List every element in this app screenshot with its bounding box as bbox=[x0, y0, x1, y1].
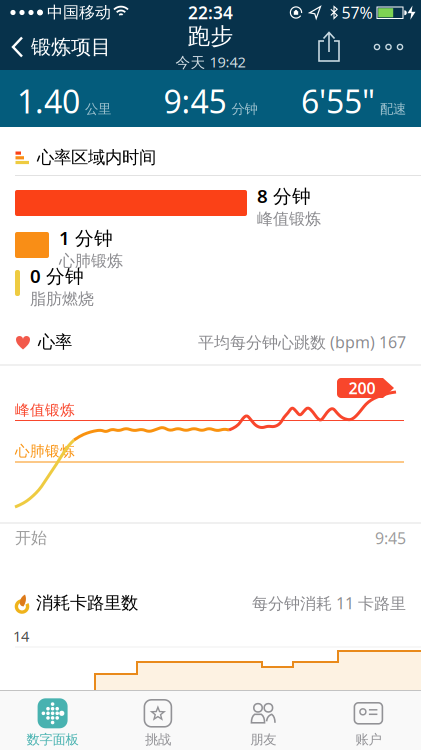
staticText: 挑战 bbox=[145, 731, 171, 748]
staticText: 心肺锻炼 bbox=[15, 442, 75, 460]
staticText: 今天 19:42 bbox=[175, 52, 245, 72]
staticText: 跑步 bbox=[187, 22, 233, 50]
staticText: 平均每分钟心跳数 (bpm) 167 bbox=[198, 331, 406, 353]
staticText: 开始 bbox=[15, 528, 47, 548]
staticText: 心率 bbox=[38, 331, 72, 353]
staticText: 脂肪燃烧 bbox=[30, 289, 94, 309]
button[interactable]: 朋友 bbox=[213, 695, 313, 750]
staticText: 1 分钟 bbox=[59, 225, 113, 250]
staticText: 峰值锻炼 bbox=[257, 209, 321, 229]
staticText: 心率区域内时间 bbox=[37, 147, 156, 168]
staticText: 8 分钟 bbox=[257, 183, 311, 208]
staticText: 200 bbox=[348, 377, 375, 399]
staticText: 峰值锻炼 bbox=[15, 401, 75, 419]
staticText: 1.40 bbox=[17, 80, 80, 122]
staticText: 数字面板 bbox=[27, 731, 79, 748]
button[interactable]: 挑战 bbox=[108, 695, 208, 750]
button[interactable]: 账户 bbox=[318, 695, 418, 750]
staticText: 锻炼项目 bbox=[31, 35, 111, 59]
staticText: 心肺锻炼 bbox=[59, 251, 123, 271]
staticText: 14 bbox=[13, 626, 29, 646]
button[interactable]: 数字面板 bbox=[3, 695, 103, 750]
staticText: 朋友 bbox=[250, 731, 276, 748]
staticText: 配速 bbox=[380, 101, 406, 117]
staticText: 账户 bbox=[355, 731, 381, 748]
staticText: 57% bbox=[341, 2, 372, 23]
staticText: 9:45 bbox=[375, 527, 406, 549]
button[interactable]: 锻炼项目 bbox=[12, 25, 142, 69]
staticText: 每分钟消耗 11 卡路里 bbox=[252, 592, 406, 614]
staticText: 中国移动 bbox=[47, 3, 111, 22]
staticText: 公里 bbox=[85, 101, 111, 117]
button[interactable]: 更多 bbox=[373, 42, 405, 52]
staticText: 6'55" bbox=[301, 80, 375, 122]
staticText: 9:45 bbox=[163, 80, 226, 122]
staticText: 22:34 bbox=[188, 1, 233, 24]
staticText: 0 分钟 bbox=[30, 263, 84, 288]
staticText: 消耗卡路里数 bbox=[36, 592, 138, 614]
staticText: 分钟 bbox=[231, 101, 257, 117]
button[interactable]: 分享 bbox=[312, 30, 346, 68]
